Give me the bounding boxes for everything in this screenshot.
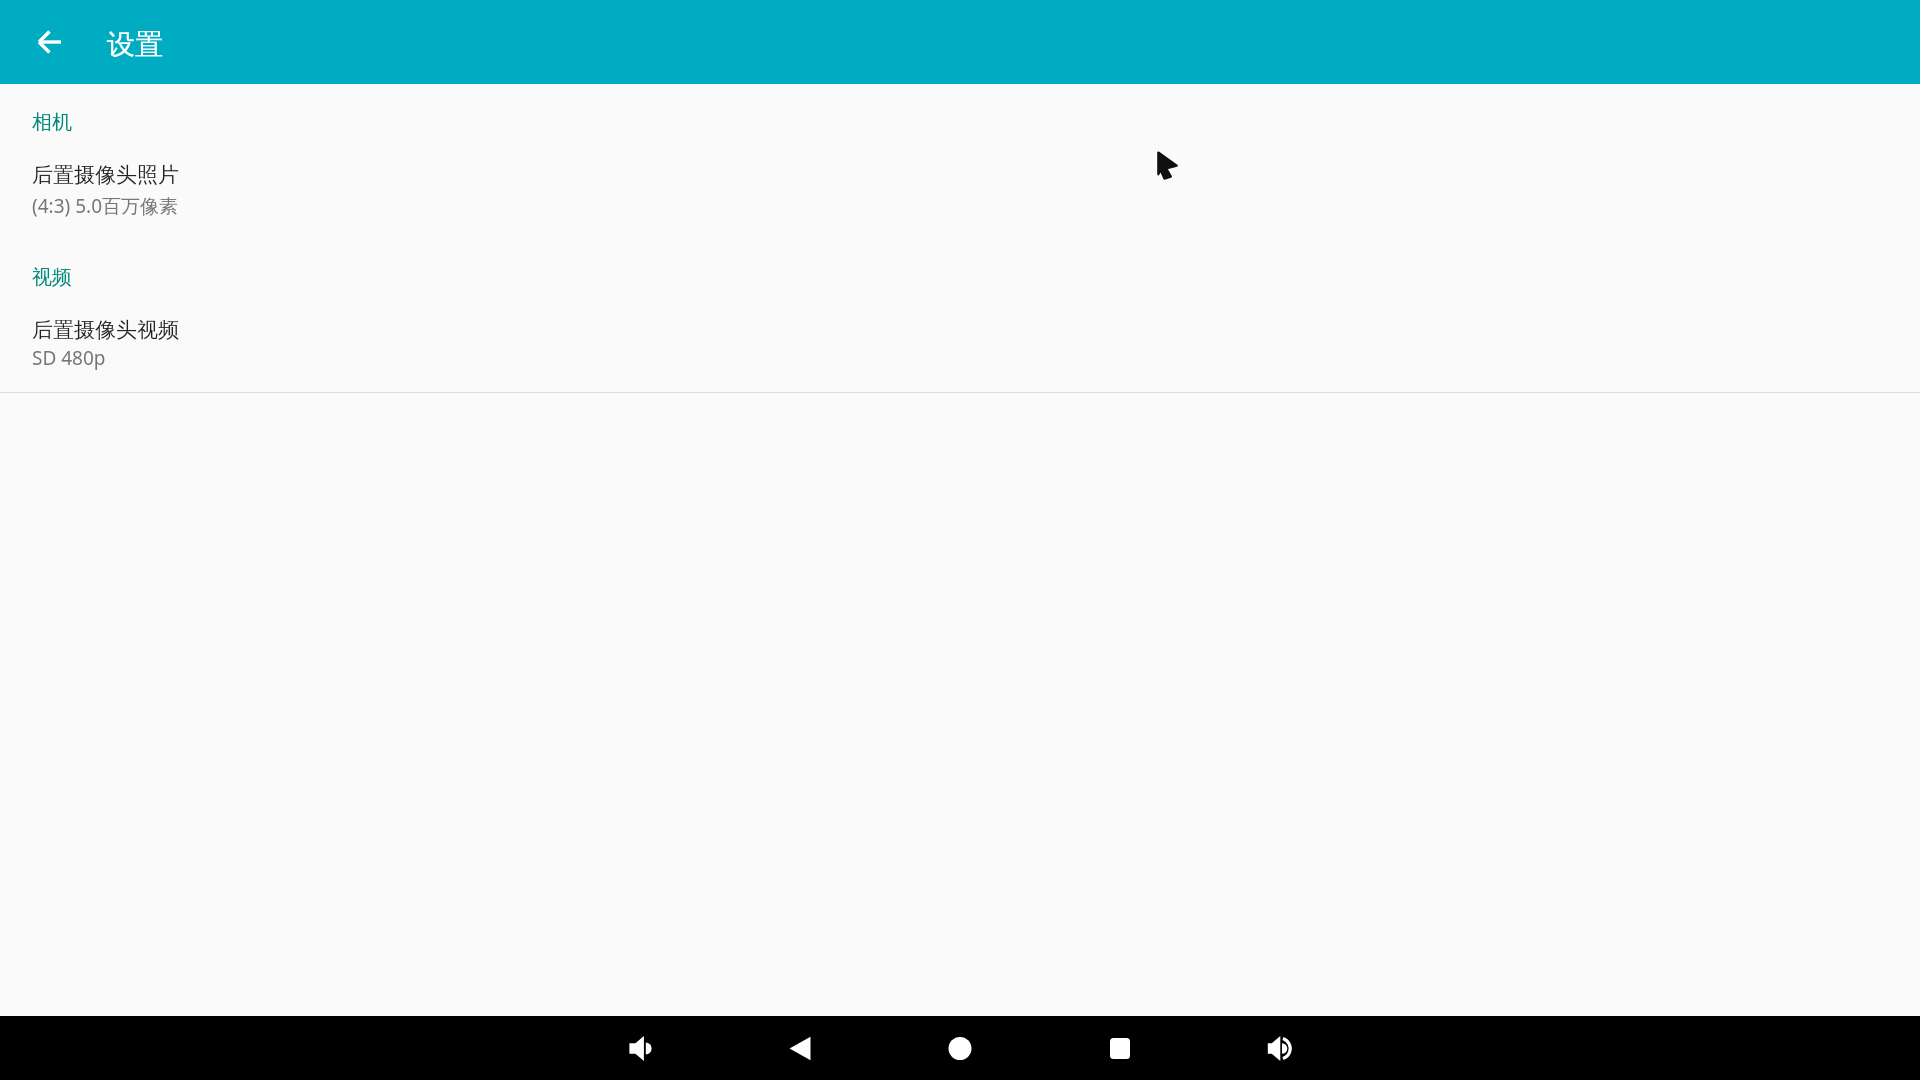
staticText: SD 480p bbox=[32, 345, 106, 371]
button[interactable] bbox=[608, 1016, 672, 1080]
button[interactable] bbox=[26, 18, 74, 66]
staticText: 后置摄像头视频 bbox=[32, 317, 179, 343]
staticText: 后置摄像头照片 bbox=[32, 162, 179, 188]
button[interactable]: 后置摄像头视频 bbox=[0, 300, 1920, 392]
staticText: 视频 bbox=[32, 265, 72, 290]
button[interactable] bbox=[928, 1016, 992, 1080]
staticText: 相机 bbox=[32, 110, 72, 135]
staticText: 设置 bbox=[107, 27, 163, 62]
staticText: (4:3) 5.0百万像素 bbox=[32, 193, 178, 219]
button[interactable] bbox=[1248, 1016, 1312, 1080]
button[interactable] bbox=[1088, 1016, 1152, 1080]
button[interactable] bbox=[768, 1016, 832, 1080]
button[interactable]: 后置摄像头照片 bbox=[0, 144, 1920, 238]
